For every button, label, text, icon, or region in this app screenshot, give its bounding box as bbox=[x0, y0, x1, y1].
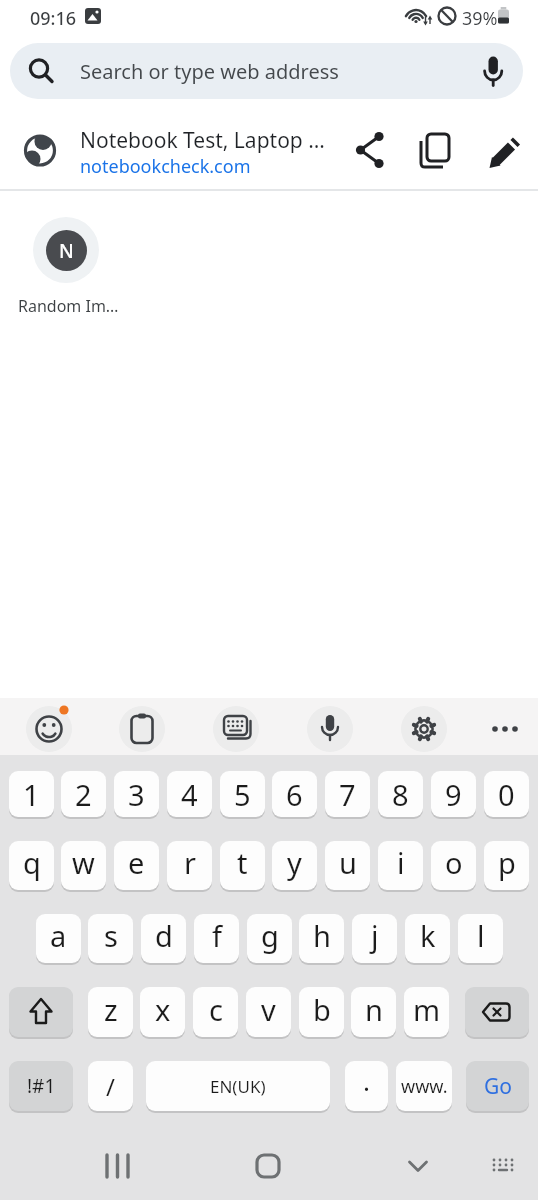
button[interactable]: 5 bbox=[220, 771, 265, 817]
staticText: . bbox=[363, 1063, 370, 1098]
staticText: z bbox=[104, 990, 118, 1029]
button[interactable]: t bbox=[220, 841, 265, 890]
button[interactable] bbox=[346, 126, 394, 174]
staticText: 1 bbox=[23, 775, 40, 814]
button[interactable]: !#1 bbox=[9, 1061, 73, 1111]
staticText: Search or type web address bbox=[80, 58, 339, 85]
button[interactable]: e bbox=[114, 841, 159, 890]
staticText: b bbox=[313, 990, 331, 1029]
staticText: n bbox=[365, 990, 383, 1029]
button[interactable]: 9 bbox=[431, 771, 476, 817]
button[interactable]: N bbox=[33, 217, 99, 283]
button[interactable] bbox=[26, 706, 72, 752]
button[interactable]: j bbox=[352, 914, 397, 963]
button[interactable] bbox=[307, 706, 353, 752]
staticText: 6 bbox=[286, 775, 303, 814]
button[interactable]: b bbox=[299, 987, 344, 1037]
button[interactable] bbox=[238, 1136, 298, 1196]
staticText: x bbox=[155, 990, 171, 1029]
button[interactable]: d bbox=[141, 914, 186, 963]
button[interactable]: y bbox=[272, 841, 317, 890]
button[interactable]: f bbox=[194, 914, 239, 963]
staticText: c bbox=[209, 990, 223, 1029]
button[interactable]: / bbox=[88, 1061, 133, 1111]
button[interactable]: x bbox=[140, 987, 185, 1037]
staticText: t bbox=[237, 843, 248, 882]
staticText: s bbox=[104, 916, 118, 955]
button[interactable]: i bbox=[378, 841, 423, 890]
button[interactable] bbox=[480, 1146, 524, 1190]
staticText: notebookcheck.com bbox=[80, 154, 251, 179]
button[interactable]: z bbox=[88, 987, 133, 1037]
staticText: g bbox=[261, 916, 279, 955]
staticText: N bbox=[59, 238, 74, 264]
button[interactable]: Go bbox=[466, 1061, 529, 1111]
staticText: p bbox=[498, 843, 516, 882]
button[interactable]: n bbox=[351, 987, 396, 1037]
staticText: l bbox=[477, 916, 485, 955]
staticText: EN(UK) bbox=[210, 1075, 266, 1098]
staticText: f bbox=[212, 916, 222, 955]
button[interactable]: l bbox=[458, 914, 503, 963]
button[interactable]: k bbox=[405, 914, 450, 963]
button[interactable]: . bbox=[345, 1061, 388, 1111]
staticText: m bbox=[413, 990, 441, 1029]
button[interactable]: o bbox=[431, 841, 476, 890]
button[interactable] bbox=[483, 706, 529, 752]
button[interactable]: 6 bbox=[272, 771, 317, 817]
staticText: 9 bbox=[445, 775, 462, 814]
button[interactable]: s bbox=[88, 914, 133, 963]
button[interactable]: p bbox=[484, 841, 529, 890]
staticText: e bbox=[128, 843, 145, 882]
button[interactable]: 3 bbox=[114, 771, 159, 817]
staticText: 4 bbox=[181, 775, 198, 814]
button[interactable]: m bbox=[404, 987, 449, 1037]
button[interactable] bbox=[401, 706, 447, 752]
staticText: 5 bbox=[234, 775, 251, 814]
staticText: 3 bbox=[128, 775, 145, 814]
staticText: / bbox=[106, 1070, 115, 1103]
button[interactable]: h bbox=[299, 914, 344, 963]
staticText: www. bbox=[401, 1074, 448, 1099]
button[interactable]: 7 bbox=[325, 771, 370, 817]
button[interactable] bbox=[480, 126, 528, 174]
button[interactable]: a bbox=[36, 914, 81, 963]
button[interactable] bbox=[465, 987, 529, 1037]
staticText: a bbox=[50, 916, 67, 955]
button[interactable]: q bbox=[9, 841, 54, 890]
button[interactable] bbox=[88, 1136, 148, 1196]
button[interactable]: www. bbox=[396, 1061, 452, 1111]
button[interactable] bbox=[119, 706, 165, 752]
staticText: r bbox=[184, 843, 196, 882]
button[interactable] bbox=[388, 1136, 448, 1196]
staticText: u bbox=[339, 843, 357, 882]
button[interactable]: r bbox=[167, 841, 212, 890]
staticText: d bbox=[155, 916, 173, 955]
button[interactable]: c bbox=[193, 987, 238, 1037]
staticText: Notebook Test, Laptop … bbox=[80, 126, 325, 155]
button[interactable] bbox=[0, 105, 340, 189]
button[interactable] bbox=[213, 706, 259, 752]
button[interactable]: g bbox=[247, 914, 292, 963]
button[interactable]: 8 bbox=[378, 771, 423, 817]
button[interactable]: 2 bbox=[61, 771, 106, 817]
button[interactable]: 0 bbox=[484, 771, 529, 817]
button[interactable] bbox=[9, 987, 73, 1037]
staticText: 8 bbox=[392, 775, 409, 814]
button[interactable]: 1 bbox=[9, 771, 54, 817]
button[interactable] bbox=[412, 126, 460, 174]
button[interactable]: Search or type web address bbox=[10, 43, 523, 99]
staticText: 09:16 bbox=[30, 6, 77, 31]
button[interactable]: 4 bbox=[167, 771, 212, 817]
button[interactable]: v bbox=[246, 987, 291, 1037]
staticText: w bbox=[72, 843, 95, 882]
button[interactable]: EN(UK) bbox=[146, 1061, 330, 1111]
staticText: h bbox=[313, 916, 331, 955]
staticText: v bbox=[261, 990, 276, 1029]
staticText: Go bbox=[484, 1072, 512, 1101]
button[interactable]: w bbox=[61, 841, 106, 890]
staticText: j bbox=[371, 916, 379, 955]
staticText: Random Im… bbox=[18, 295, 119, 317]
button[interactable]: u bbox=[325, 841, 370, 890]
staticText: !#1 bbox=[27, 1073, 56, 1099]
